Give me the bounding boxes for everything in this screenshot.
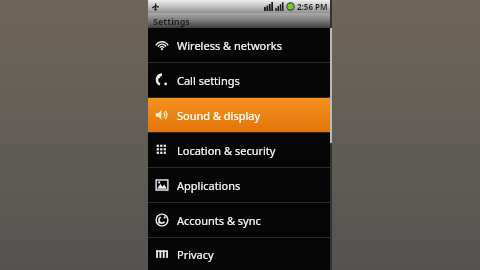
button[interactable]: Applications xyxy=(148,168,332,202)
staticText: Applications xyxy=(177,178,241,193)
staticText: Settings xyxy=(153,15,190,27)
button[interactable]: Privacy xyxy=(148,238,332,270)
button[interactable]: Call settings xyxy=(148,63,332,97)
staticText: Sound & display xyxy=(177,108,261,123)
staticText: Privacy xyxy=(177,247,214,262)
button[interactable]: Location & security xyxy=(148,133,332,167)
staticText: Location & security xyxy=(177,143,276,158)
other: USB connected xyxy=(151,2,160,11)
staticText: 2:56 PM xyxy=(297,1,328,12)
staticText: Accounts & sync xyxy=(177,213,261,228)
button[interactable]: Wireless & networks xyxy=(148,28,332,62)
button[interactable]: Sound & display xyxy=(148,98,332,132)
staticText: Wireless & networks xyxy=(177,38,282,53)
button[interactable]: Accounts & sync xyxy=(148,203,332,237)
staticText: Call settings xyxy=(177,73,240,88)
